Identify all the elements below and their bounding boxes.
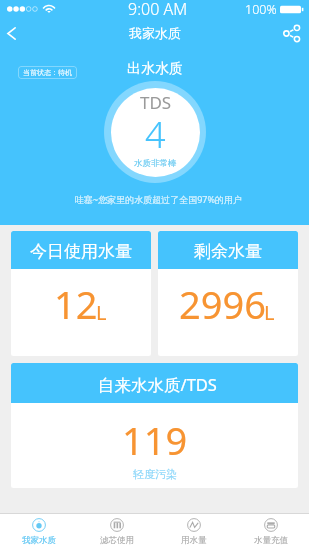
button[interactable]: Share: [279, 18, 309, 48]
staticText: 今日使用水量: [30, 241, 132, 262]
staticText: 自来水水质/TDS: [98, 373, 217, 396]
staticText: L: [264, 299, 275, 326]
staticText: 4: [145, 110, 166, 159]
staticText: 用水量: [181, 535, 207, 546]
staticText: 12: [54, 278, 98, 330]
button[interactable]: 滤芯使用: [78, 513, 155, 550]
button[interactable]: 剩余水量: [158, 231, 298, 356]
button[interactable]: 我家水质: [0, 513, 78, 550]
button[interactable]: 今日使用水量: [11, 231, 151, 356]
staticText: 哇塞~您家里的水质超过了全国97%的用户: [75, 193, 242, 205]
button[interactable]: 用水量: [155, 513, 232, 550]
button[interactable]: Back: [0, 18, 30, 48]
button[interactable]: 水量充值: [232, 513, 309, 550]
staticText: 我家水质: [22, 535, 56, 546]
staticText: 水质非常棒: [134, 158, 177, 169]
button[interactable]: 当前状态：待机: [23, 66, 72, 79]
button[interactable]: 自来水水质/TDS: [11, 363, 298, 488]
staticText: L: [96, 299, 107, 326]
staticText: 滤芯使用: [100, 535, 134, 546]
staticText: 9:00 AM: [128, 0, 188, 16]
staticText: 我家水质: [129, 25, 181, 41]
staticText: 119: [122, 414, 188, 466]
staticText: 剩余水量: [194, 241, 262, 262]
staticText: 轻度污染: [133, 467, 177, 481]
staticText: 2996: [179, 278, 266, 330]
staticText: 出水水质: [127, 60, 183, 78]
staticText: TDS: [140, 91, 172, 114]
staticText: 100%: [245, 1, 277, 18]
staticText: 当前状态：待机: [23, 68, 72, 77]
staticText: 水量充值: [254, 535, 288, 546]
